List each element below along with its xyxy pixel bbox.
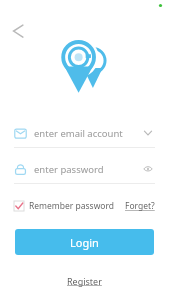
button[interactable]: enter password <box>14 158 155 180</box>
staticText: enter email account <box>34 127 123 140</box>
staticText: Remember password <box>29 200 115 212</box>
button[interactable]: Register <box>63 271 106 291</box>
button[interactable]: Back <box>4 16 32 44</box>
staticText: Forget? <box>125 200 155 212</box>
staticText: Register <box>67 275 102 287</box>
button[interactable]: Login <box>15 229 154 255</box>
button[interactable]: Remember password <box>14 200 115 212</box>
button[interactable]: Show saved accounts <box>141 126 155 140</box>
button[interactable]: Forget? <box>125 200 155 212</box>
button[interactable]: Show password <box>141 162 155 176</box>
staticText: enter password <box>34 163 104 176</box>
staticText: Login <box>70 235 99 250</box>
button[interactable]: enter email account <box>14 122 155 144</box>
